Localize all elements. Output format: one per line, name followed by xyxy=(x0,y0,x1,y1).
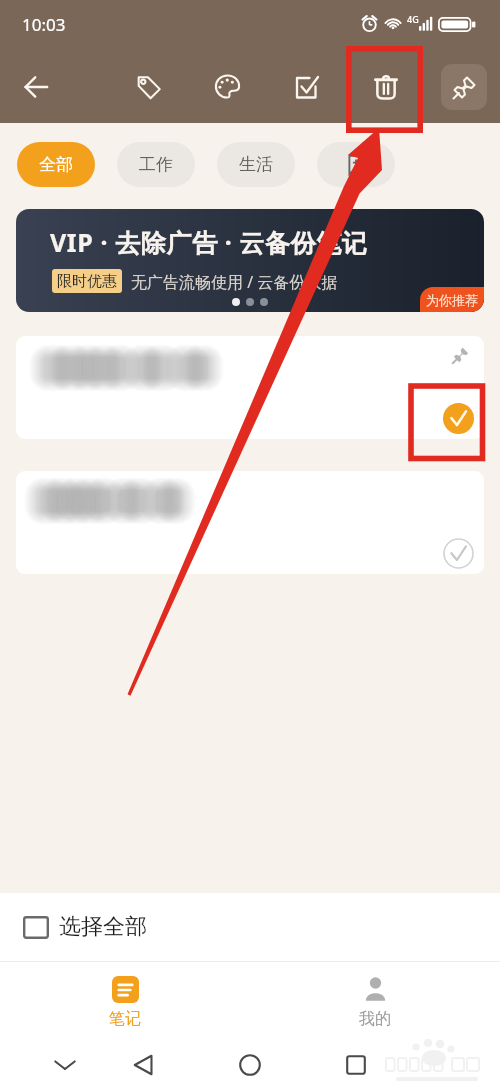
staticText: 为你推荐 xyxy=(426,292,478,308)
staticText: 选择全部 xyxy=(59,913,147,941)
button[interactable]: Select note xyxy=(16,336,484,439)
button[interactable]: 选择全部 xyxy=(0,893,500,961)
button[interactable]: 我的 xyxy=(250,968,500,1037)
button[interactable]: Hide keyboard xyxy=(42,1042,88,1088)
staticText: 工作 xyxy=(139,154,173,175)
staticText: 生活 xyxy=(239,154,273,175)
staticText: 笔记 xyxy=(109,1009,141,1029)
button[interactable]: Select all xyxy=(283,64,329,110)
button[interactable]: 工作 xyxy=(117,142,195,187)
button[interactable]: Select note xyxy=(440,535,476,571)
button[interactable]: Delete xyxy=(363,64,409,110)
staticText: VIP · 去除广告 · 云备份笔记 xyxy=(50,225,368,259)
staticText: 10:03 xyxy=(22,13,66,36)
button[interactable]: Select note xyxy=(440,400,476,436)
button[interactable]: VIP · 去除广告 · 云备份笔记 xyxy=(16,209,484,312)
button[interactable]: Select note xyxy=(16,471,484,574)
staticText: 全部 xyxy=(39,154,73,175)
button[interactable]: Back xyxy=(121,1042,167,1088)
button[interactable]: 全部 xyxy=(17,142,95,187)
button[interactable]: 笔记 xyxy=(0,968,250,1037)
button[interactable]: Add folder xyxy=(317,142,395,187)
staticText: 4G xyxy=(407,13,419,25)
button[interactable]: 生活 xyxy=(217,142,295,187)
button[interactable]: Theme xyxy=(204,63,250,109)
button[interactable]: Pin xyxy=(441,64,487,110)
button[interactable]: Recents xyxy=(333,1042,379,1088)
button[interactable]: Home xyxy=(227,1042,273,1088)
button[interactable]: Tag xyxy=(126,63,172,109)
staticText: 限时优惠 xyxy=(57,272,117,291)
button[interactable]: Back xyxy=(14,65,58,109)
staticText: 我的 xyxy=(359,1009,391,1029)
staticText: 无广告流畅使用 / 云备份数据 xyxy=(131,271,338,293)
